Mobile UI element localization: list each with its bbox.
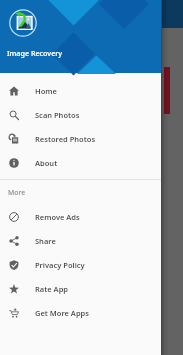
button[interactable]: Remove Ads [0, 205, 161, 229]
staticText: Restored Photos [35, 134, 96, 144]
staticText: Image Recovery [7, 48, 63, 58]
button[interactable]: Rate App [0, 277, 161, 301]
button[interactable]: About [0, 151, 161, 175]
button[interactable]: Scan Photos [0, 103, 161, 127]
staticText: Remove Ads [35, 212, 80, 222]
staticText: Scan Photos [35, 110, 80, 120]
button[interactable]: Get More Apps [0, 301, 161, 325]
staticText: Privacy Policy [35, 260, 85, 270]
staticText: Share [35, 236, 56, 246]
staticText: More [8, 188, 26, 197]
staticText: Get More Apps [35, 308, 89, 318]
button[interactable]: Home [0, 79, 161, 103]
staticText: About [35, 158, 58, 168]
button[interactable]: Share [0, 229, 161, 253]
button[interactable]: Privacy Policy [0, 253, 161, 277]
staticText: Home [35, 86, 57, 96]
staticText: Rate App [35, 284, 69, 294]
button[interactable]: Restored Photos [0, 127, 161, 151]
